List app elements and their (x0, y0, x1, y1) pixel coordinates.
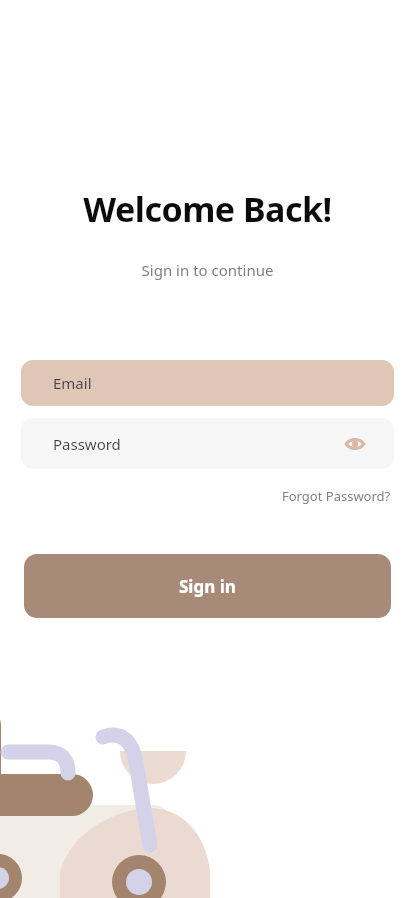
button[interactable]: Sign in (24, 554, 391, 618)
button[interactable]: Show password (342, 431, 368, 457)
staticText: Sign in to continue (0, 260, 415, 280)
button[interactable]: Forgot Password? (278, 483, 395, 509)
button[interactable]: Email (21, 360, 394, 406)
staticText: Email (53, 373, 92, 393)
staticText: Welcome Back! (0, 186, 415, 232)
button[interactable]: Password (21, 418, 394, 469)
staticText: Password (53, 434, 121, 454)
staticText: Forgot Password? (282, 487, 391, 505)
staticText: Sign in (179, 575, 236, 598)
